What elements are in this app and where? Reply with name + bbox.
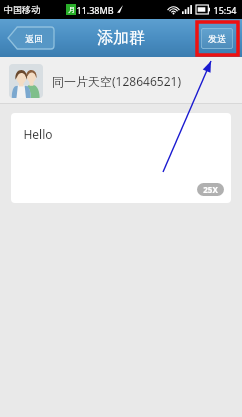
button[interactable]: 发送 (201, 28, 233, 49)
staticText: Hello (23, 126, 53, 142)
button[interactable]: 同一片天空(128646521) (0, 57, 242, 104)
button[interactable]: Hello (11, 113, 231, 203)
staticText: 月 (68, 5, 75, 14)
staticText: 中国移动 (4, 4, 40, 15)
staticText: 25X (203, 184, 218, 195)
button[interactable]: 返回 (8, 27, 54, 49)
staticText: 发送 (208, 33, 226, 44)
staticText: 11.38MB (76, 4, 114, 16)
staticText: 返回 (25, 33, 43, 44)
staticText: 添加群 (97, 28, 145, 48)
staticText: 同一片天空(128646521) (52, 73, 181, 89)
staticText: 15:54 (213, 4, 237, 16)
